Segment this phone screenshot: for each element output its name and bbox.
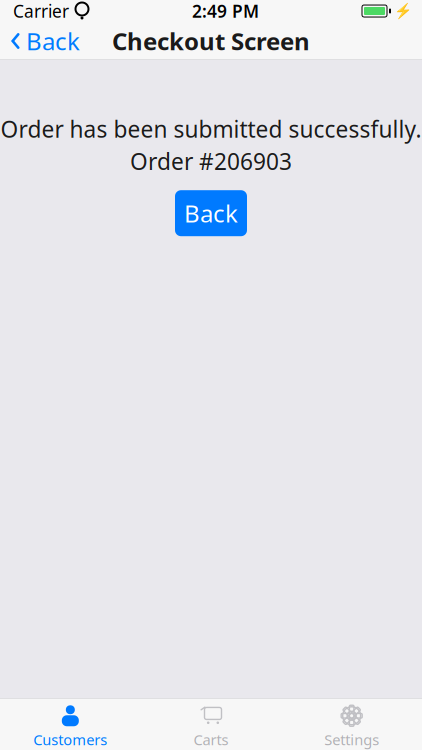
staticText: Carts [193,730,228,749]
staticText: Checkout Screen [112,25,310,57]
staticText: Carrier [13,0,69,22]
button[interactable]: Carts [141,698,281,750]
button[interactable]: Back [0,22,90,60]
button[interactable]: Customers [0,698,141,750]
staticText: Order #206903 [130,146,292,176]
staticText: Customers [33,730,107,749]
button[interactable]: Settings [281,698,422,750]
staticText: Settings [324,730,379,749]
staticText: Back [26,25,80,57]
staticText: Order has been submitted successfully. [0,114,421,144]
staticText: 2:49 PM [192,0,259,22]
staticText: ⚡ [394,3,412,19]
staticText: Back [184,197,238,229]
button[interactable]: Back [175,190,247,236]
